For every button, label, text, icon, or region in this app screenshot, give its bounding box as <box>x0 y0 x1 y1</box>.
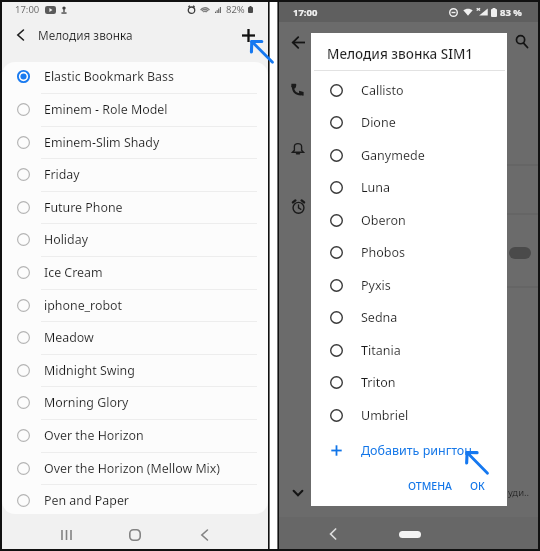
button[interactable]: Eminem-Slim Shady <box>2 126 268 159</box>
button[interactable]: Phobos <box>311 236 507 269</box>
staticText: Sedna <box>361 309 398 326</box>
staticText: Dione <box>361 114 396 131</box>
staticText: Umbriel <box>361 407 409 424</box>
button[interactable]: Add ringtone <box>231 19 266 51</box>
staticText: Morning Glory <box>44 394 129 411</box>
staticText: Ice Cream <box>44 264 103 281</box>
button[interactable]: Over the Horizon <box>2 419 268 452</box>
button[interactable]: Ice Cream <box>2 256 268 289</box>
staticText: Meadow <box>44 329 94 346</box>
button[interactable]: Titania <box>311 334 507 367</box>
button[interactable]: Pyxis <box>311 269 507 302</box>
staticText: Triton <box>361 374 396 391</box>
staticText: 17:00 <box>15 3 40 16</box>
button[interactable]: iphone_robot <box>2 289 268 322</box>
staticText: Мелодия звонка SIM1 <box>327 45 474 63</box>
staticText: ОТМЕНА <box>408 479 452 493</box>
staticText: Oberon <box>361 212 406 229</box>
staticText: Over the Horizon (Mellow Mix) <box>44 460 221 477</box>
button[interactable]: Meadow <box>2 321 268 354</box>
button[interactable]: ОК <box>463 474 492 498</box>
button[interactable]: Over the Horizon (Mellow Mix) <box>2 452 268 485</box>
staticText: Мелодия звонка <box>38 27 133 43</box>
button[interactable]: Morning Glory <box>2 386 268 419</box>
button[interactable]: Добавить рингтон <box>311 434 507 467</box>
button[interactable]: Friday <box>2 158 268 191</box>
staticText: ОК <box>470 479 485 493</box>
staticText: Friday <box>44 166 80 183</box>
button[interactable]: Elastic Bookmark Bass <box>2 62 268 93</box>
staticText: Pen and Paper <box>44 492 129 509</box>
button[interactable]: Back <box>320 521 346 547</box>
button[interactable]: Toggle <box>509 247 531 259</box>
button[interactable]: Ganymede <box>311 139 507 172</box>
staticText: Phobos <box>361 244 406 261</box>
button[interactable]: Navigate up <box>284 28 312 56</box>
staticText: 17:00 <box>293 6 318 19</box>
staticText: Eminem - Role Model <box>44 101 168 118</box>
button[interactable]: Luna <box>311 171 507 204</box>
button[interactable]: Recent apps <box>50 519 82 551</box>
button[interactable]: Search <box>508 27 536 55</box>
button[interactable]: Sedna <box>311 301 507 334</box>
button[interactable]: Triton <box>311 366 507 399</box>
staticText: Eminem-Slim Shady <box>44 134 160 151</box>
button[interactable]: Expand <box>286 481 310 505</box>
staticText: уди.. <box>508 486 530 499</box>
button[interactable]: Oberon <box>311 204 507 237</box>
staticText: iphone_robot <box>44 297 123 314</box>
button[interactable]: Home <box>399 531 421 538</box>
staticText: Midnight Swing <box>44 362 135 379</box>
button[interactable]: Holiday <box>2 223 268 256</box>
button[interactable]: Umbriel <box>311 399 507 432</box>
button[interactable]: Future Phone <box>2 191 268 224</box>
button[interactable]: ОТМЕНА <box>401 474 459 498</box>
button[interactable]: Back <box>2 19 38 51</box>
button[interactable]: Home <box>119 519 151 551</box>
staticText: Elastic Bookmark Bass <box>44 68 174 85</box>
staticText: Pyxis <box>361 277 391 294</box>
staticText: Callisto <box>361 82 404 99</box>
staticText: Luna <box>361 179 391 196</box>
staticText: Holiday <box>44 231 88 248</box>
staticText: Добавить рингтон <box>361 442 472 459</box>
staticText: Titania <box>361 342 401 359</box>
button[interactable]: Midnight Swing <box>2 354 268 387</box>
staticText: Ganymede <box>361 147 425 164</box>
button[interactable]: Eminem - Role Model <box>2 93 268 126</box>
button[interactable]: Callisto <box>311 74 507 107</box>
staticText: 83 % <box>500 6 522 19</box>
staticText: Future Phone <box>44 199 123 216</box>
button[interactable]: Dione <box>311 106 507 139</box>
staticText: 82% <box>226 3 245 16</box>
button[interactable]: Pen and Paper <box>2 484 268 514</box>
staticText: Over the Horizon <box>44 427 144 444</box>
button[interactable]: Back <box>188 519 220 551</box>
